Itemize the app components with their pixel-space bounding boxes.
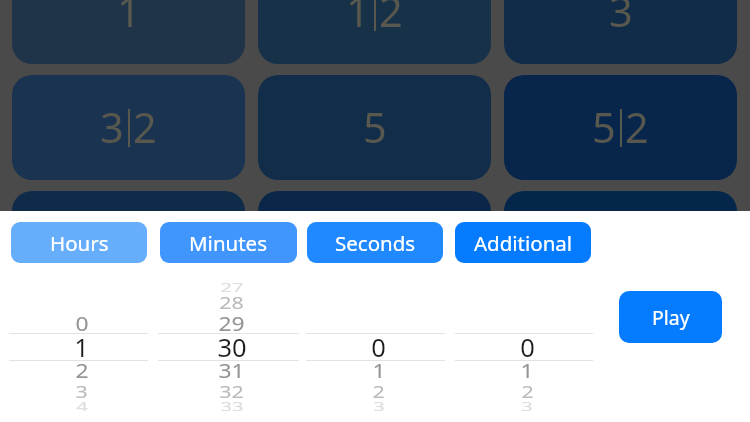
button[interactable]: Seconds value picker: [306, 211, 445, 422]
button[interactable]: Minutes: [160, 222, 297, 263]
staticText: 3: [75, 380, 88, 402]
staticText: 0: [371, 330, 386, 365]
button[interactable]: rhythm 3: [504, 0, 737, 64]
staticText: Additional: [474, 229, 573, 257]
button[interactable]: Minutes value picker: [158, 211, 299, 422]
staticText: 2: [372, 380, 385, 402]
staticText: 3: [609, 0, 633, 40]
button[interactable]: rhythm 3 over 2: [12, 75, 245, 180]
staticText: 0: [520, 330, 535, 365]
staticText: 3: [100, 99, 124, 156]
staticText: 0: [75, 310, 89, 337]
staticText: 2: [133, 99, 157, 156]
staticText: Hours: [50, 229, 109, 257]
button[interactable]: Seconds: [307, 222, 443, 263]
button[interactable]: rhythm 5 over 2: [504, 75, 737, 180]
staticText: 27: [220, 279, 244, 295]
staticText: 30: [217, 330, 247, 365]
button[interactable]: rhythm 1 over 2: [258, 0, 491, 64]
staticText: 29: [218, 310, 245, 337]
staticText: 2: [625, 99, 649, 156]
staticText: 3: [521, 398, 533, 414]
staticText: 1: [117, 0, 141, 40]
staticText: 2: [75, 357, 89, 384]
staticText: 1: [346, 0, 370, 40]
staticText: 1: [74, 330, 89, 365]
staticText: 28: [219, 291, 244, 313]
button[interactable]: rhythm 5: [258, 75, 491, 180]
staticText: 2: [379, 0, 403, 40]
button[interactable]: Hours value picker: [9, 211, 148, 422]
staticText: 32: [219, 380, 244, 402]
staticText: 1: [372, 357, 386, 384]
staticText: Seconds: [335, 229, 416, 257]
button[interactable]: Additional value picker: [455, 211, 593, 422]
staticText: Play: [652, 304, 690, 331]
button[interactable]: rhythm preset: [12, 191, 245, 296]
staticText: 5: [363, 99, 387, 156]
staticText: 2: [521, 380, 534, 402]
staticText: 31: [218, 357, 245, 384]
staticText: 5: [592, 99, 616, 156]
button[interactable]: Hours: [11, 222, 147, 263]
staticText: 3: [373, 398, 385, 414]
staticText: 4: [76, 398, 88, 414]
staticText: 1: [520, 357, 534, 384]
staticText: 33: [220, 398, 244, 414]
button[interactable]: rhythm preset: [258, 191, 491, 296]
button[interactable]: rhythm 1: [12, 0, 245, 64]
staticText: Minutes: [189, 229, 268, 257]
button[interactable]: rhythm preset: [504, 191, 737, 296]
button[interactable]: Play: [619, 291, 722, 343]
button[interactable]: Additional: [455, 222, 591, 263]
